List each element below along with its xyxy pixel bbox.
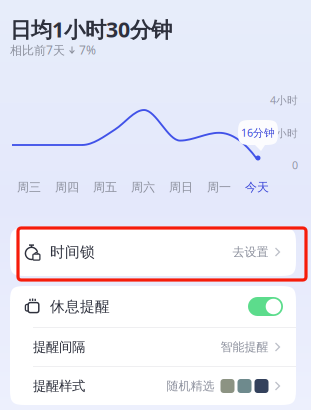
staticText: 日均1小时30分钟 bbox=[10, 15, 172, 43]
button[interactable]: 休息提醒开关 bbox=[248, 297, 283, 316]
staticText: 4小时 bbox=[270, 93, 298, 107]
button[interactable]: 提醒间隔 bbox=[10, 328, 296, 366]
staticText: 0 bbox=[292, 158, 298, 172]
staticText: 智能提醒 bbox=[220, 340, 268, 354]
staticText: 相比前7天 bbox=[10, 42, 65, 58]
staticText: 提醒样式 bbox=[33, 378, 85, 394]
button[interactable]: 时间锁 bbox=[10, 228, 296, 276]
staticText: 随机精选 bbox=[166, 379, 214, 393]
staticText: 周三 bbox=[17, 180, 41, 195]
staticText: 周五 bbox=[93, 180, 117, 195]
staticText: 2小时 bbox=[270, 126, 298, 140]
staticText: 16分钟 bbox=[241, 125, 275, 140]
staticText: 周日 bbox=[169, 180, 193, 195]
button[interactable]: 提醒样式 bbox=[10, 367, 296, 405]
staticText: 7% bbox=[79, 42, 96, 58]
staticText: 休息提醒 bbox=[50, 297, 110, 315]
staticText: 时间锁 bbox=[50, 243, 95, 261]
staticText: 提醒间隔 bbox=[33, 339, 85, 355]
staticText: 去设置 bbox=[232, 245, 268, 259]
staticText: 周六 bbox=[131, 180, 155, 195]
staticText: 周一 bbox=[207, 180, 231, 195]
staticText: 今天 bbox=[245, 180, 269, 195]
staticText: 周四 bbox=[55, 180, 79, 195]
